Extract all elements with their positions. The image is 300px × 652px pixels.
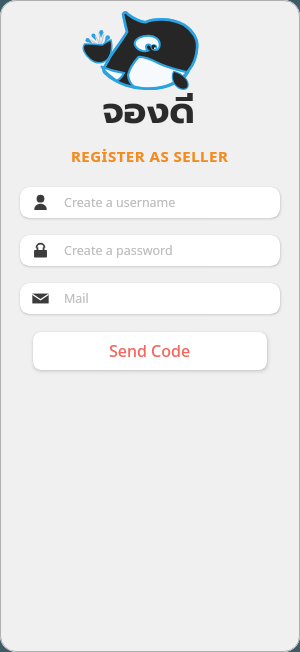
staticText: Create a username <box>64 194 176 211</box>
staticText: Send Code <box>109 340 191 362</box>
button[interactable]: Create a password <box>20 235 280 266</box>
staticText: REGİSTER AS SELLER <box>71 146 229 166</box>
button[interactable]: Create a username <box>20 187 280 218</box>
button[interactable]: Mail <box>20 283 280 314</box>
staticText: จองดี <box>102 84 195 138</box>
staticText: Create a password <box>64 242 173 259</box>
button[interactable]: Send Code <box>33 332 267 370</box>
staticText: Mail <box>64 290 89 307</box>
